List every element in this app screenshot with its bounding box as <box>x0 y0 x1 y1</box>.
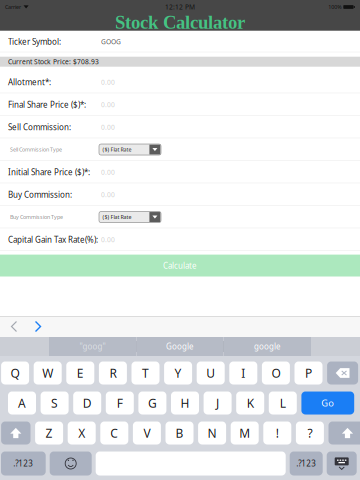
staticText: J <box>216 395 219 411</box>
button[interactable]: I <box>229 361 257 384</box>
button[interactable]: E <box>66 361 94 384</box>
staticText: ! <box>276 425 279 441</box>
staticText: 0.00 <box>101 100 115 109</box>
staticText: 0.00 <box>101 78 115 86</box>
button[interactable]: R <box>99 361 127 384</box>
button[interactable]: Shift <box>1 421 30 444</box>
staticText: 12:12 PM <box>165 3 195 11</box>
staticText: O <box>271 365 280 381</box>
button[interactable]: B <box>165 421 193 444</box>
button[interactable]: google <box>224 337 311 356</box>
button[interactable]: N <box>198 421 226 444</box>
button[interactable]: Delete <box>327 361 358 384</box>
staticText: google <box>254 341 281 352</box>
staticText: W <box>42 365 53 381</box>
button[interactable]: K <box>236 391 264 414</box>
staticText: .?123 <box>13 458 33 469</box>
button[interactable]: Go <box>301 391 354 414</box>
button[interactable]: .?123 <box>290 451 323 475</box>
staticText: Capital Gain Tax Rate(%): <box>8 234 98 245</box>
button[interactable]: Shift <box>328 421 360 444</box>
staticText: "goog" <box>79 341 105 352</box>
button[interactable]: "goog" <box>49 337 136 356</box>
staticText: Calculate <box>163 260 197 271</box>
button[interactable]: ! <box>263 421 291 444</box>
staticText: A <box>18 395 26 411</box>
staticText: Initial Share Price ($)*: <box>8 167 90 177</box>
button[interactable]: Q <box>1 361 29 384</box>
staticText: 0.00 <box>101 235 115 244</box>
staticText: Ticker Symbol: <box>8 36 61 47</box>
button[interactable]: C <box>100 421 128 444</box>
staticText: ($) Flat Rate <box>102 146 131 153</box>
staticText: P <box>305 365 312 381</box>
staticText: T <box>142 365 149 381</box>
button[interactable]: ($) Flat Rate <box>99 144 161 155</box>
button[interactable]: J <box>204 391 232 414</box>
button[interactable]: Y <box>164 361 192 384</box>
staticText: F <box>117 395 123 411</box>
staticText: Carrier <box>5 3 21 11</box>
staticText: S <box>51 395 58 411</box>
staticText: 0.00 <box>101 190 115 199</box>
button[interactable]: X <box>68 421 96 444</box>
staticText: Y <box>175 365 182 381</box>
button[interactable]: Z <box>35 421 63 444</box>
button[interactable]: F <box>106 391 134 414</box>
staticText: 0.00 <box>101 123 115 131</box>
staticText: Go <box>321 397 334 409</box>
button[interactable]: Emoji <box>50 451 92 475</box>
button[interactable]: S <box>41 391 69 414</box>
staticText: 0.00 <box>101 168 115 176</box>
button[interactable]: V <box>133 421 161 444</box>
staticText: Q <box>11 365 20 381</box>
staticText: U <box>206 365 215 381</box>
button[interactable]: Google <box>137 337 223 356</box>
button[interactable]: T <box>131 361 159 384</box>
staticText: D <box>83 395 92 411</box>
button[interactable]: D <box>73 391 101 414</box>
button[interactable]: .?123 <box>1 451 46 475</box>
staticText: ? <box>307 425 312 441</box>
staticText: GOOG <box>101 37 121 46</box>
staticText: Z <box>46 425 53 441</box>
staticText: E <box>77 365 84 381</box>
button[interactable]: O <box>262 361 290 384</box>
staticText: G <box>148 395 157 411</box>
button[interactable]: L <box>269 391 297 414</box>
button[interactable]: Previous field <box>2 316 26 337</box>
button[interactable]: ? <box>296 421 324 444</box>
staticText: Current Stock Price: $708.93 <box>8 57 99 66</box>
staticText: Sell Commission: <box>8 122 71 132</box>
button[interactable]: G <box>138 391 166 414</box>
button[interactable]: H <box>171 391 199 414</box>
staticText: Buy Commission: <box>8 189 72 200</box>
staticText: Google <box>166 341 194 352</box>
button[interactable]: M <box>231 421 259 444</box>
staticText: M <box>239 425 250 441</box>
staticText: X <box>78 425 85 441</box>
staticText: Final Share Price ($)*: <box>8 99 86 110</box>
staticText: .?123 <box>296 458 316 469</box>
staticText: K <box>247 395 254 411</box>
button[interactable]: W <box>34 361 62 384</box>
staticText: C <box>110 425 118 441</box>
staticText: ($) Flat Rate <box>102 213 131 221</box>
staticText: N <box>208 425 217 441</box>
staticText: 100% <box>328 3 341 11</box>
button[interactable]: P <box>294 361 322 384</box>
button[interactable]: Space <box>96 451 286 475</box>
staticText: Buy Commission Type <box>10 213 63 221</box>
button[interactable]: Hide keyboard <box>327 451 357 475</box>
staticText: H <box>180 395 189 411</box>
staticText: V <box>143 425 150 441</box>
button[interactable]: A <box>8 391 36 414</box>
staticText: B <box>175 425 183 441</box>
staticText: L <box>280 395 286 411</box>
staticText: R <box>109 365 116 381</box>
button[interactable]: U <box>197 361 225 384</box>
button[interactable]: Next field <box>26 316 50 337</box>
button[interactable]: ($) Flat Rate <box>99 211 161 222</box>
staticText: Sell Commission Type <box>10 146 62 153</box>
button[interactable]: Calculate <box>0 255 360 276</box>
